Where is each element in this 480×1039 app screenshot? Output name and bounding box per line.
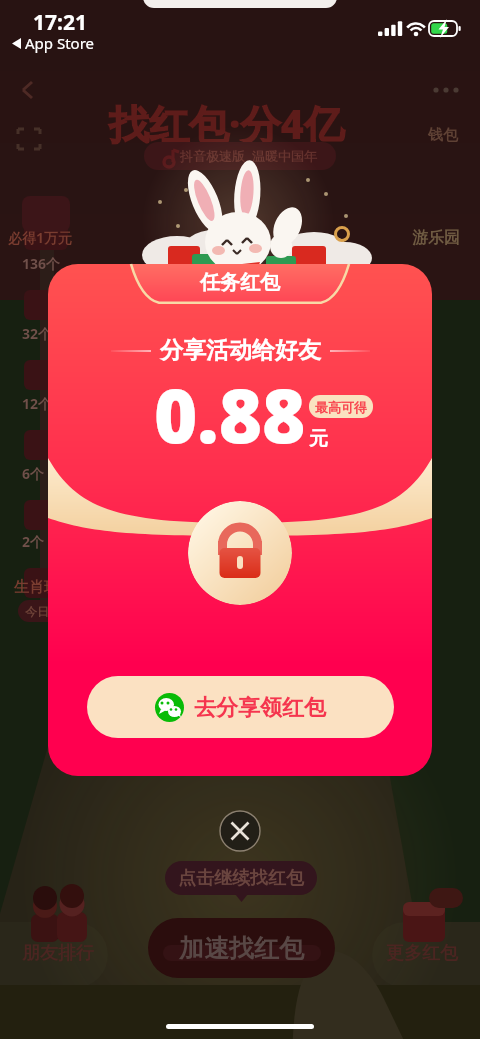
staticText: 生肖玩法	[14, 578, 74, 597]
button[interactable]: 更多红包	[372, 888, 472, 965]
staticText: 朋友排行	[22, 942, 94, 965]
staticText: 元	[309, 427, 328, 451]
staticText: 12个	[22, 394, 53, 413]
staticText: 找红包·分4亿	[109, 96, 344, 151]
button[interactable]: 点击继续找红包	[165, 861, 317, 895]
staticText: 点击继续找红包	[178, 867, 304, 890]
staticText: 最高可得	[315, 399, 367, 415]
staticText: 加速找红包	[179, 933, 304, 964]
staticText: 去分享领红包	[194, 694, 326, 722]
staticText: 32个	[22, 324, 53, 343]
button[interactable]: Unlock red packet	[188, 501, 292, 605]
button[interactable]: 朋友排行	[8, 888, 108, 965]
staticText: 6个	[22, 464, 45, 483]
staticText: App Store	[25, 33, 95, 53]
staticText: 136个	[22, 254, 61, 273]
staticText: 17:21	[33, 8, 87, 37]
staticText: 抖音极速版 温暖中国年	[180, 147, 317, 165]
staticText: 任务红包	[200, 270, 280, 295]
staticText: 游乐园	[412, 228, 460, 248]
button[interactable]: 任务红包	[131, 264, 349, 305]
staticText: 必得1万元	[8, 228, 73, 247]
staticText: 更多红包	[386, 942, 458, 965]
staticText: 钱包	[428, 126, 458, 145]
staticText: 2个	[22, 532, 45, 551]
button[interactable]: Close	[216, 807, 264, 855]
staticText: 0.88	[154, 364, 306, 465]
staticText: 分享活动给好友	[160, 336, 321, 365]
button[interactable]: 去分享领红包	[87, 676, 394, 738]
staticText: 今日上线	[25, 604, 73, 619]
button[interactable]: 加速找红包	[148, 918, 335, 978]
